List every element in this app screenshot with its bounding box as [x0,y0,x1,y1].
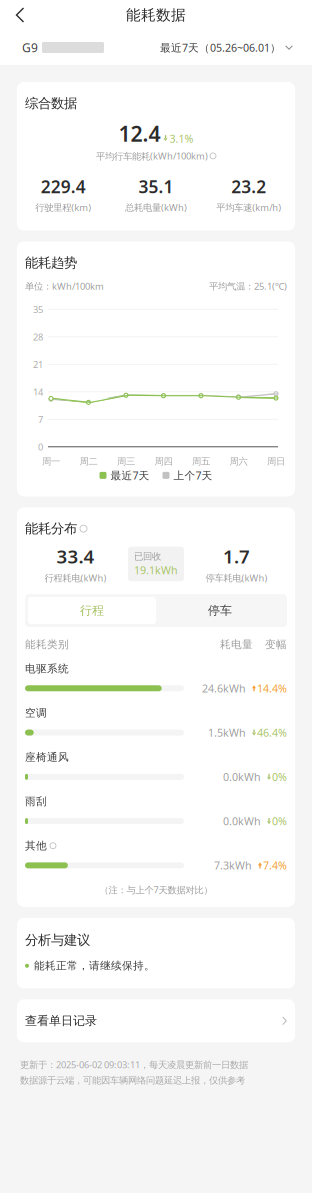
staticText: 数据源于云端，可能因车辆网络问题延迟上报，仅供参考 [20,1075,245,1086]
staticText: 14.4% [257,681,287,695]
staticText: 能耗数据 [126,6,186,24]
staticText: 周一 [42,456,60,467]
staticText: 周三 [117,456,135,467]
staticText: 单位：kWh/100km [25,280,104,292]
staticText: 3.1% [169,131,193,146]
staticText: 12.4 [118,119,160,148]
staticText: 35 [33,303,43,315]
staticText: 0% [272,770,287,784]
staticText: 停车 [208,603,232,618]
staticText: 查看单日记录 [25,1013,97,1028]
staticText: 229.4 [41,175,86,198]
staticText: 电驱系统 [25,662,69,675]
staticText: 能耗正常，请继续保持。 [34,959,155,972]
button[interactable]: 最近7天（05.26~06.01） [160,35,293,60]
staticText: 能耗类别 [25,638,69,651]
staticText: 总耗电量(kWh) [125,201,187,213]
staticText: 周四 [154,456,172,467]
staticText: 33.4 [56,544,94,569]
staticText: 周日 [267,456,285,467]
staticText: 1.5kWh [208,725,246,740]
staticText: 能耗分布 [25,520,77,537]
staticText: 0.0kWh [223,814,261,828]
staticText: 行驶里程(km) [35,201,91,213]
staticText: 7.3kWh [214,858,252,872]
staticText: 0 [38,441,43,453]
staticText: 28 [33,331,43,343]
button[interactable]: 查看单日记录 [0,988,312,1042]
staticText: 上个7天 [173,468,212,482]
staticText: 综合数据 [25,95,77,111]
staticText: 0% [272,814,287,828]
staticText: 0.0kWh [223,770,261,784]
staticText: 周六 [229,456,247,467]
staticText: 行程耗电(kWh) [44,572,106,584]
staticText: 1.7 [223,544,250,569]
staticText: 其他 [25,839,47,852]
staticText: 座椅通风 [25,751,69,764]
staticText: 平均车速(km/h) [216,201,281,213]
staticText: 耗电量 [220,638,253,651]
staticText: 19.1kWh [134,563,178,577]
staticText: G9 [22,39,38,55]
staticText: 14 [33,386,43,398]
button[interactable]: 停车 [156,597,284,624]
staticText: 46.4% [257,725,287,740]
staticText: 24.6kWh [202,681,246,695]
staticText: 雨刮 [25,795,47,808]
staticText: 行程 [80,603,104,618]
staticText: 变幅 [265,638,287,651]
staticText: 7.4% [263,858,287,872]
staticText: 周五 [192,456,210,467]
staticText: 平均行车能耗(kWh/100km) [96,150,208,162]
staticText: 21 [33,358,43,370]
staticText: 最近7天 [110,468,149,482]
staticText: 35.1 [138,175,173,198]
staticText: 周二 [79,456,97,467]
staticText: 更新于：2025-06-02 09:03:11，每天凌晨更新前一日数据 [20,1058,248,1071]
button[interactable]: 行程 [28,597,156,624]
staticText: 空调 [25,706,47,719]
staticText: 能耗趋势 [25,254,77,271]
staticText: 23.2 [231,175,266,198]
staticText: 7 [38,413,43,425]
staticText: 已回收 [134,551,161,562]
staticText: （注：与上个7天数据对比） [99,883,212,896]
staticText: 停车耗电(kWh) [205,572,267,584]
button[interactable]: 返回 [0,3,38,27]
staticText: 分析与建议 [25,932,90,948]
staticText: 平均气温：25.1(℃) [209,280,287,292]
staticText: 最近7天（05.26~06.01） [160,40,281,55]
